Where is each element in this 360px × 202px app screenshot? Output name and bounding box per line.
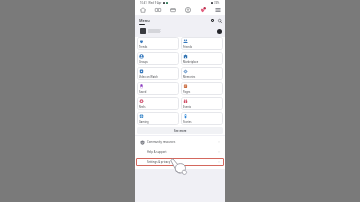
button[interactable]: Settings [210, 18, 215, 23]
button[interactable]: Settings & privacy [135, 157, 225, 167]
button[interactable]: See more [137, 127, 223, 134]
button[interactable]: Video [150, 5, 165, 15]
staticText: Menu [139, 18, 150, 23]
staticText: Help & support [147, 150, 167, 154]
button[interactable]: Marketplace [181, 52, 223, 65]
button[interactable]: Memories [181, 67, 223, 80]
button[interactable]: Notifications [195, 5, 210, 15]
button[interactable]: Marketplace [165, 5, 180, 15]
button[interactable]: Search [217, 18, 222, 23]
button[interactable] [135, 25, 225, 37]
button[interactable]: Reels [137, 97, 179, 110]
staticText: 74% [214, 1, 220, 5]
staticText: Community resources [147, 140, 176, 144]
staticText: Events [183, 105, 192, 108]
staticText: 10:41 Wed 9 Apr [140, 1, 162, 5]
button[interactable]: Menu [210, 5, 225, 15]
staticText: Memories [183, 75, 196, 78]
button[interactable]: Trends [137, 37, 179, 50]
staticText: Gaming [139, 120, 149, 123]
button[interactable]: Pages [181, 82, 223, 95]
staticText: See more [174, 129, 187, 133]
staticText: Friends [183, 45, 192, 48]
button[interactable]: Groups [137, 52, 179, 65]
button[interactable]: Groups [180, 5, 195, 15]
button[interactable]: Events [181, 97, 223, 110]
staticText: Trends [139, 45, 148, 48]
staticText: Pages [183, 90, 191, 93]
button[interactable]: Home [135, 5, 150, 15]
staticText: Saved [139, 90, 147, 93]
button[interactable]: Friends [181, 37, 223, 50]
staticText: Groups [139, 60, 148, 63]
button[interactable]: Community resources [135, 137, 225, 147]
staticText: Reels [139, 105, 146, 108]
button[interactable]: Gaming [137, 112, 179, 125]
button[interactable]: Help & support [135, 147, 225, 157]
button[interactable]: Stories [181, 112, 223, 125]
staticText: Video on Watch [139, 75, 158, 78]
staticText: Stories [183, 120, 192, 123]
button[interactable]: Video on Watch [137, 67, 179, 80]
staticText: Settings & privacy [147, 160, 171, 164]
button[interactable]: Saved [137, 82, 179, 95]
staticText: Marketplace [183, 60, 199, 63]
